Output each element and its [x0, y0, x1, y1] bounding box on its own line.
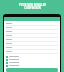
button[interactable]: [6, 22, 58, 26]
button[interactable]: [6, 55, 58, 58]
button[interactable]: [6, 26, 58, 30]
button[interactable]: [6, 64, 58, 67]
button[interactable]: [6, 50, 58, 54]
button[interactable]: Sign up: [6, 68, 58, 72]
button[interactable]: [6, 42, 58, 46]
button[interactable]: [6, 61, 58, 64]
button[interactable]: [6, 38, 58, 42]
staticText: YOUR NEW RESELLER COMPANION: [19, 3, 46, 9]
button[interactable]: [6, 34, 58, 38]
button[interactable]: [6, 30, 58, 34]
button[interactable]: [6, 46, 58, 50]
button[interactable]: [6, 58, 58, 61]
